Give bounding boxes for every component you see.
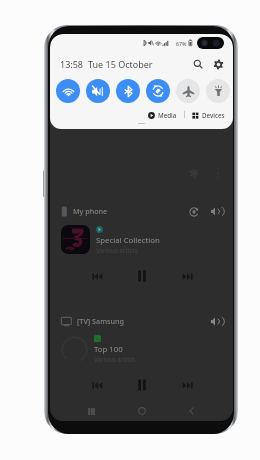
button[interactable]: Next (176, 265, 198, 287)
staticText: Tue 15 October (88, 58, 153, 70)
button[interactable]: Pause (130, 374, 154, 396)
button[interactable]: Flashlight (206, 79, 230, 103)
staticText: Special Collection (96, 235, 160, 246)
button[interactable]: Home (132, 401, 152, 421)
button[interactable]: Previous (86, 374, 108, 396)
staticText: [TV] Samsung (77, 316, 124, 326)
button[interactable]: Volume (209, 315, 222, 328)
staticText: 13:58 (60, 58, 84, 70)
staticText: Devices (202, 111, 225, 119)
staticText: Various artists (94, 355, 136, 363)
staticText: Media (158, 111, 177, 119)
button[interactable]: Next (176, 374, 198, 396)
staticText: My phone (73, 206, 108, 216)
button[interactable]: Media (148, 111, 177, 119)
button[interactable]: Search (191, 57, 205, 71)
button[interactable]: Devices (192, 111, 225, 119)
button[interactable]: Clear (187, 166, 201, 180)
staticText: Top 100 (94, 344, 123, 355)
button[interactable]: Auto rotate (146, 79, 170, 103)
button[interactable]: Bluetooth (116, 79, 140, 103)
button[interactable]: Back (182, 401, 202, 421)
staticText: Various artists (96, 246, 138, 254)
button[interactable]: Mute (86, 79, 110, 103)
button[interactable]: Pause (130, 265, 154, 287)
button[interactable]: Airplane mode (176, 79, 200, 103)
button[interactable]: Settings (211, 57, 225, 71)
staticText: 67% (176, 40, 187, 47)
button[interactable]: Cast output (187, 205, 200, 218)
button[interactable]: Volume (209, 205, 222, 218)
button[interactable]: Previous (86, 265, 108, 287)
button[interactable]: Recents (81, 401, 101, 421)
button[interactable]: Wi-Fi (56, 79, 80, 103)
